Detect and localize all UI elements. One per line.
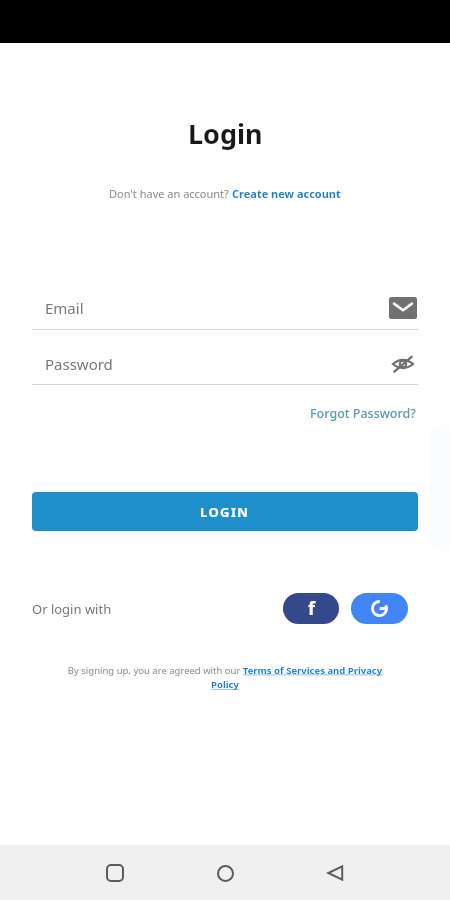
- button[interactable]: Show password: [388, 349, 418, 379]
- staticText: Password: [45, 354, 113, 374]
- button[interactable]: Password: [32, 344, 418, 384]
- staticText: Login: [188, 115, 263, 152]
- button[interactable]: Email: [32, 287, 418, 329]
- staticText: Forgot Password?: [310, 405, 416, 422]
- staticText: f: [308, 596, 315, 621]
- other: Email: [388, 293, 418, 323]
- button[interactable]: Login with Google: [351, 593, 408, 624]
- button[interactable]: Forgot Password?: [306, 401, 420, 426]
- button[interactable]: Recent apps: [94, 852, 136, 894]
- button[interactable]: Home: [204, 852, 246, 894]
- button[interactable]: Back: [314, 852, 356, 894]
- staticText: Create new account: [232, 186, 341, 201]
- staticText: Don't have an account?: [109, 186, 232, 201]
- button[interactable]: Login with Facebook: [283, 593, 339, 624]
- button[interactable]: Don't have an account?: [103, 184, 347, 203]
- button[interactable]: By signing up, you are agreed with our T…: [60, 664, 390, 691]
- staticText: LOGIN: [200, 503, 250, 521]
- staticText: Email: [45, 298, 84, 318]
- staticText: By signing up, you are agreed with our T…: [60, 664, 390, 691]
- button[interactable]: LOGIN: [32, 492, 418, 531]
- staticText: Or login with: [32, 600, 112, 618]
